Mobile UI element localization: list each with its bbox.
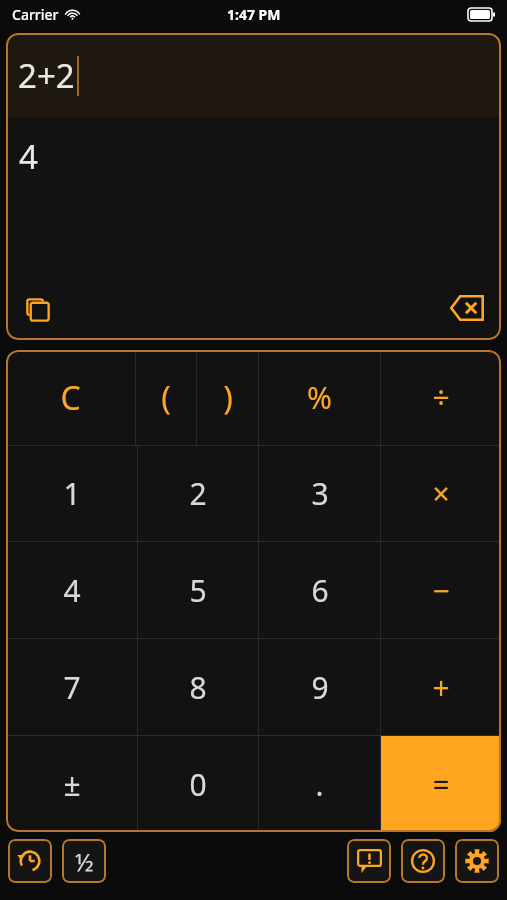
button[interactable]: 1 <box>6 446 137 541</box>
button[interactable]: 5 <box>138 542 258 638</box>
button[interactable]: 4 <box>6 542 137 638</box>
button[interactable]: + <box>381 639 501 735</box>
button[interactable]: 0 <box>138 736 258 832</box>
button[interactable]: % <box>259 350 380 445</box>
staticText: 1 <box>63 473 81 514</box>
button[interactable]: 3 <box>259 446 380 541</box>
staticText: 8 <box>189 667 207 708</box>
staticText: 2+2 <box>18 53 75 98</box>
staticText: C <box>60 376 81 420</box>
staticText: 5 <box>189 570 207 611</box>
staticText: Carrier <box>12 5 59 24</box>
button[interactable]: 7 <box>6 639 137 735</box>
staticText: ± <box>63 764 81 805</box>
button[interactable]: ÷ <box>381 350 501 445</box>
button[interactable]: × <box>381 446 501 541</box>
button[interactable]: 2 <box>138 446 258 541</box>
staticText: 1:47 PM <box>227 5 281 24</box>
staticText: 2 <box>189 473 207 514</box>
button[interactable]: = <box>381 736 501 832</box>
button[interactable]: ± <box>6 736 137 832</box>
button[interactable]: ) <box>197 350 258 445</box>
staticText: + <box>432 667 450 708</box>
staticText: 0 <box>189 764 207 805</box>
button[interactable]: 8 <box>138 639 258 735</box>
button[interactable]: 9 <box>259 639 380 735</box>
staticText: − <box>432 570 450 611</box>
staticText: ½ <box>75 845 94 878</box>
button[interactable]: Help <box>401 839 445 883</box>
button[interactable]: History <box>8 839 52 883</box>
staticText: 4 <box>19 134 38 179</box>
button[interactable]: Copy result <box>16 288 60 332</box>
staticText: × <box>432 473 450 514</box>
staticText: 3 <box>311 473 329 514</box>
button[interactable]: 6 <box>259 542 380 638</box>
button[interactable]: C <box>6 350 135 445</box>
button[interactable]: − <box>381 542 501 638</box>
staticText: ( <box>161 376 171 420</box>
button[interactable]: Settings <box>455 839 499 883</box>
button[interactable]: . <box>259 736 380 832</box>
button[interactable]: 2+2 <box>6 33 501 117</box>
staticText: ÷ <box>432 377 450 418</box>
staticText: 6 <box>311 570 329 611</box>
button[interactable]: ( <box>136 350 196 445</box>
staticText: 4 <box>63 570 81 611</box>
staticText: 7 <box>63 667 81 708</box>
button[interactable]: Fractions <box>62 839 106 883</box>
staticText: % <box>307 377 332 418</box>
staticText: 9 <box>311 667 329 708</box>
staticText: = <box>432 764 450 805</box>
button[interactable]: Backspace <box>443 284 491 332</box>
button[interactable]: Feedback <box>347 839 391 883</box>
staticText: . <box>315 764 324 805</box>
staticText: ) <box>223 376 233 420</box>
